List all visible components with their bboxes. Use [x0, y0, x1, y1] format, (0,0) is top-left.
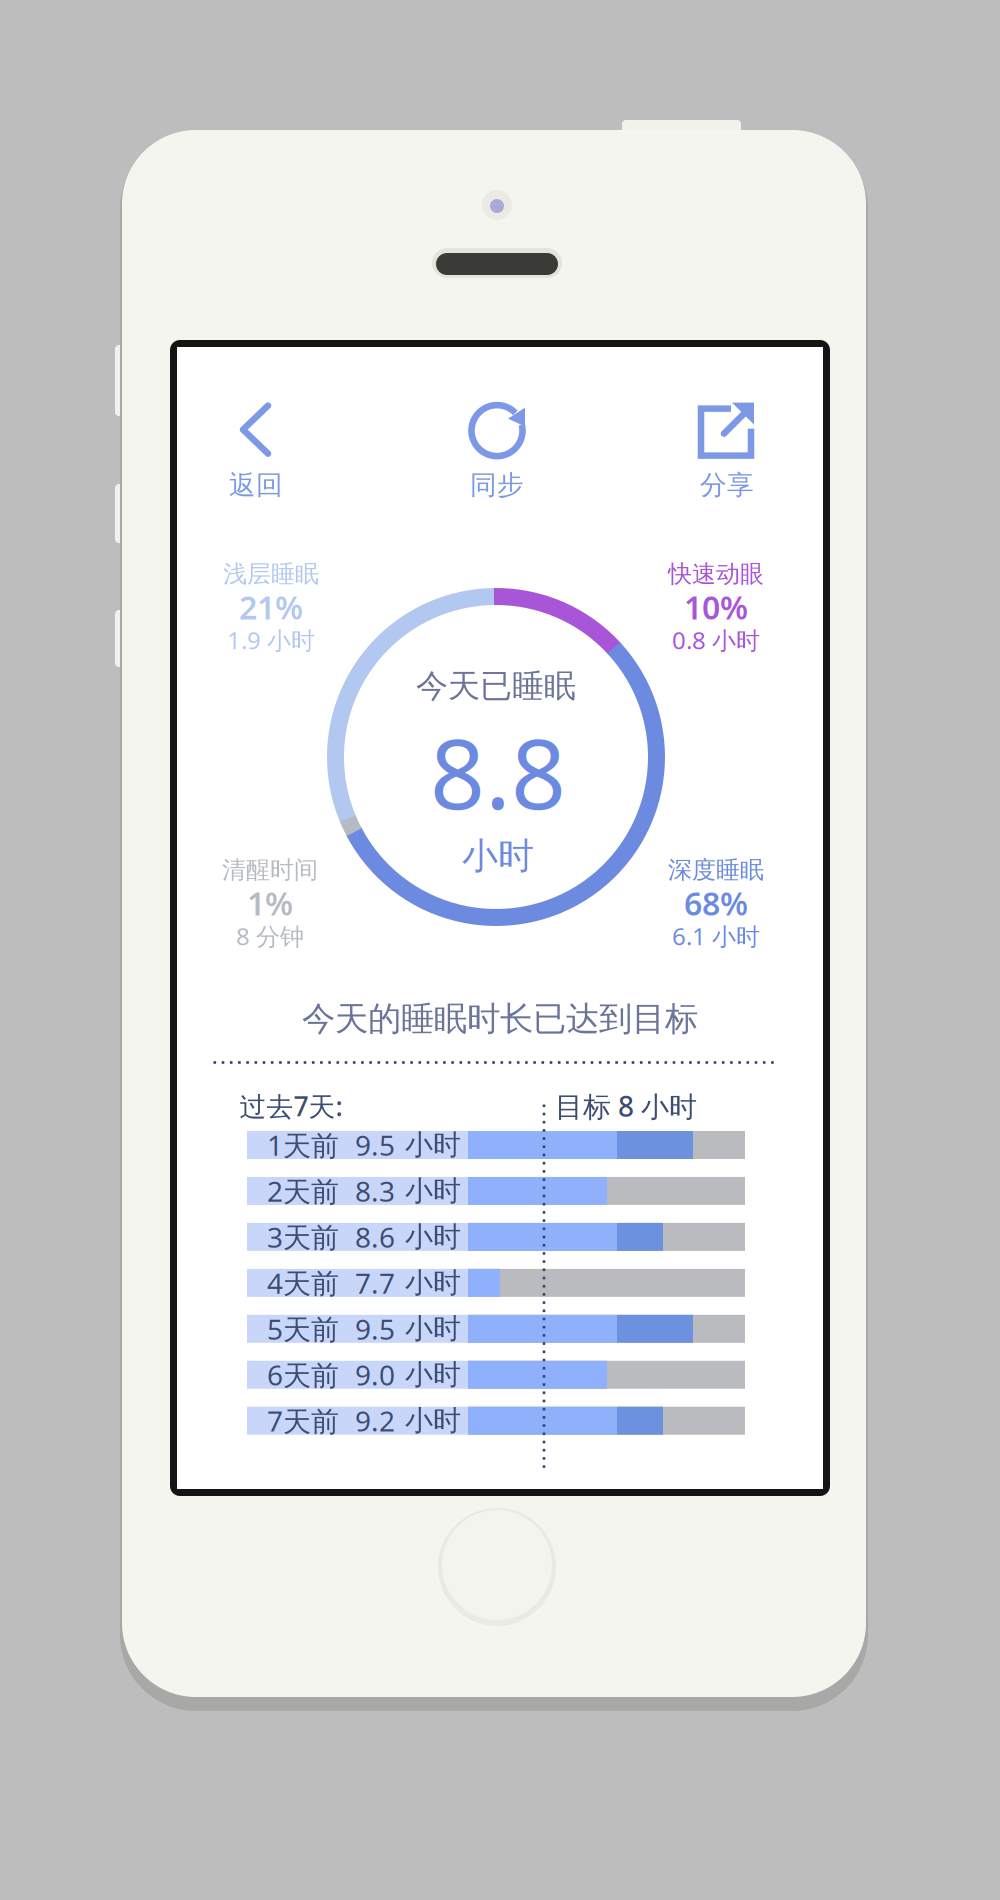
staticText: 9.5 [355, 1126, 395, 1164]
staticText: 小时 [405, 1358, 461, 1392]
staticText: 8.3 [355, 1172, 395, 1210]
staticText: 小时 [405, 1128, 461, 1162]
staticText: 7.7 [355, 1264, 395, 1301]
staticText: 小时 [405, 1266, 461, 1300]
button[interactable]: 同步 [422, 392, 572, 508]
staticText: 0.8 小时 [672, 624, 760, 656]
staticText: 分享 [700, 469, 754, 501]
staticText: 清醒时间 [222, 855, 318, 885]
staticText: 1% [247, 882, 293, 924]
staticText: 1天前 [267, 1126, 339, 1164]
staticText: 同步 [470, 469, 524, 501]
staticText: 8.6 [355, 1218, 395, 1255]
staticText: 9.0 [355, 1356, 395, 1393]
staticText: 小时 [405, 1403, 461, 1438]
staticText: 6.1 小时 [672, 920, 760, 952]
staticText: 2天前 [267, 1172, 339, 1210]
staticText: 8.8 [430, 708, 566, 836]
staticText: 浅层睡眠 [223, 559, 319, 589]
staticText: 8 分钟 [236, 920, 304, 952]
staticText: 小时 [405, 1220, 461, 1254]
staticText: 10% [684, 586, 748, 628]
staticText: 过去7天: [239, 1088, 342, 1124]
staticText: 深度睡眠 [668, 855, 764, 885]
staticText: 小时 [405, 1174, 461, 1208]
staticText: 9.2 [355, 1402, 395, 1439]
staticText: 7天前 [267, 1402, 339, 1439]
staticText: 今天的睡眠时长已达到目标 [302, 998, 698, 1039]
staticText: 3天前 [267, 1218, 339, 1255]
staticText: 今天已睡眠 [416, 666, 576, 706]
staticText: 快速动眼 [668, 559, 764, 589]
staticText: 小时 [462, 834, 534, 878]
staticText: 目标 8 小时 [555, 1087, 697, 1125]
staticText: 21% [239, 586, 303, 628]
button[interactable]: 返回 [181, 392, 331, 508]
button[interactable]: 分享 [652, 392, 802, 508]
staticText: 9.5 [355, 1310, 395, 1347]
staticText: 6天前 [267, 1356, 339, 1393]
staticText: 5天前 [267, 1310, 339, 1347]
staticText: 1.9 小时 [227, 624, 315, 656]
staticText: 小时 [405, 1312, 461, 1346]
staticText: 68% [684, 882, 748, 924]
staticText: 返回 [229, 469, 283, 501]
staticText: 4天前 [267, 1264, 339, 1301]
